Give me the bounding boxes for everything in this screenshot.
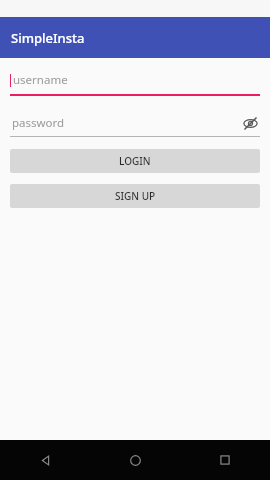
button[interactable]: SIGN UP	[10, 184, 260, 208]
button[interactable]: username	[10, 72, 260, 96]
staticText: password	[12, 115, 240, 131]
staticText: SIGN UP	[115, 189, 156, 203]
button[interactable]: Recent apps	[180, 440, 270, 480]
staticText: SimpleInsta	[11, 29, 85, 47]
button[interactable]: Home	[90, 440, 180, 480]
button[interactable]: Back	[0, 440, 90, 480]
staticText: LOGIN	[119, 154, 151, 168]
button[interactable]: LOGIN	[10, 149, 260, 173]
staticText: username	[13, 72, 68, 88]
button[interactable]: Toggle password visibility	[240, 113, 260, 133]
button[interactable]: password	[10, 113, 260, 137]
